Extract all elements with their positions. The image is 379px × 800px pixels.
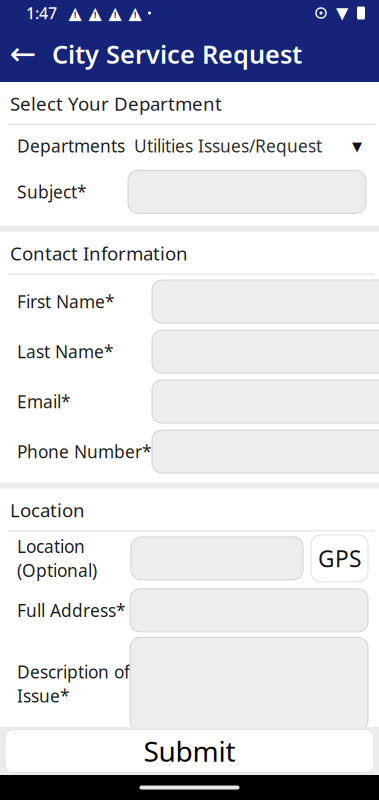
staticText: Select Your Department — [10, 91, 222, 116]
staticText: Submit — [143, 732, 235, 770]
staticText: First Name* — [17, 290, 115, 313]
staticText: Utilities Issues/Request — [134, 134, 322, 157]
staticText: Contact Information — [10, 241, 188, 266]
staticText: ▲ — [108, 3, 121, 23]
button[interactable]: Last Name* — [0, 327, 379, 377]
staticText: Location — [17, 535, 85, 558]
staticText: ▼ — [336, 4, 348, 22]
button[interactable] — [131, 537, 303, 580]
staticText: (Optional) — [17, 559, 97, 582]
staticText: ▲ — [128, 3, 141, 23]
staticText: ! — [134, 10, 136, 20]
staticText: ▲ — [88, 3, 101, 23]
button[interactable]: Departments — [0, 125, 379, 167]
staticText: Full Address* — [17, 599, 126, 622]
staticText: GPS — [318, 543, 361, 573]
staticText: Phone Number* — [17, 440, 152, 463]
staticText: Issue* — [17, 684, 70, 707]
button[interactable]: Subject* — [0, 167, 379, 217]
staticText: Last Name* — [17, 340, 114, 363]
button[interactable]: Full Address* — [0, 585, 379, 635]
staticText: 1:47 — [26, 2, 57, 24]
button[interactable]: Phone Number* — [0, 427, 379, 477]
staticText: City Service Request — [52, 37, 302, 71]
staticText: Subject* — [17, 180, 87, 203]
staticText: ! — [74, 10, 76, 20]
button[interactable]: Submit — [0, 729, 379, 772]
staticText: Location — [10, 498, 85, 522]
button[interactable]: Back — [0, 32, 46, 76]
button[interactable]: First Name* — [0, 277, 379, 327]
staticText: ← — [9, 36, 36, 72]
staticText: ! — [114, 10, 116, 20]
staticText: Departments — [17, 134, 125, 157]
staticText: ! — [94, 10, 96, 20]
staticText: ▲ — [68, 3, 81, 23]
staticText: Description of — [17, 660, 130, 683]
staticText: ▾ — [352, 134, 362, 157]
staticText: Email* — [17, 390, 71, 413]
button[interactable]: Email* — [0, 377, 379, 427]
button[interactable]: GPS — [311, 535, 368, 582]
